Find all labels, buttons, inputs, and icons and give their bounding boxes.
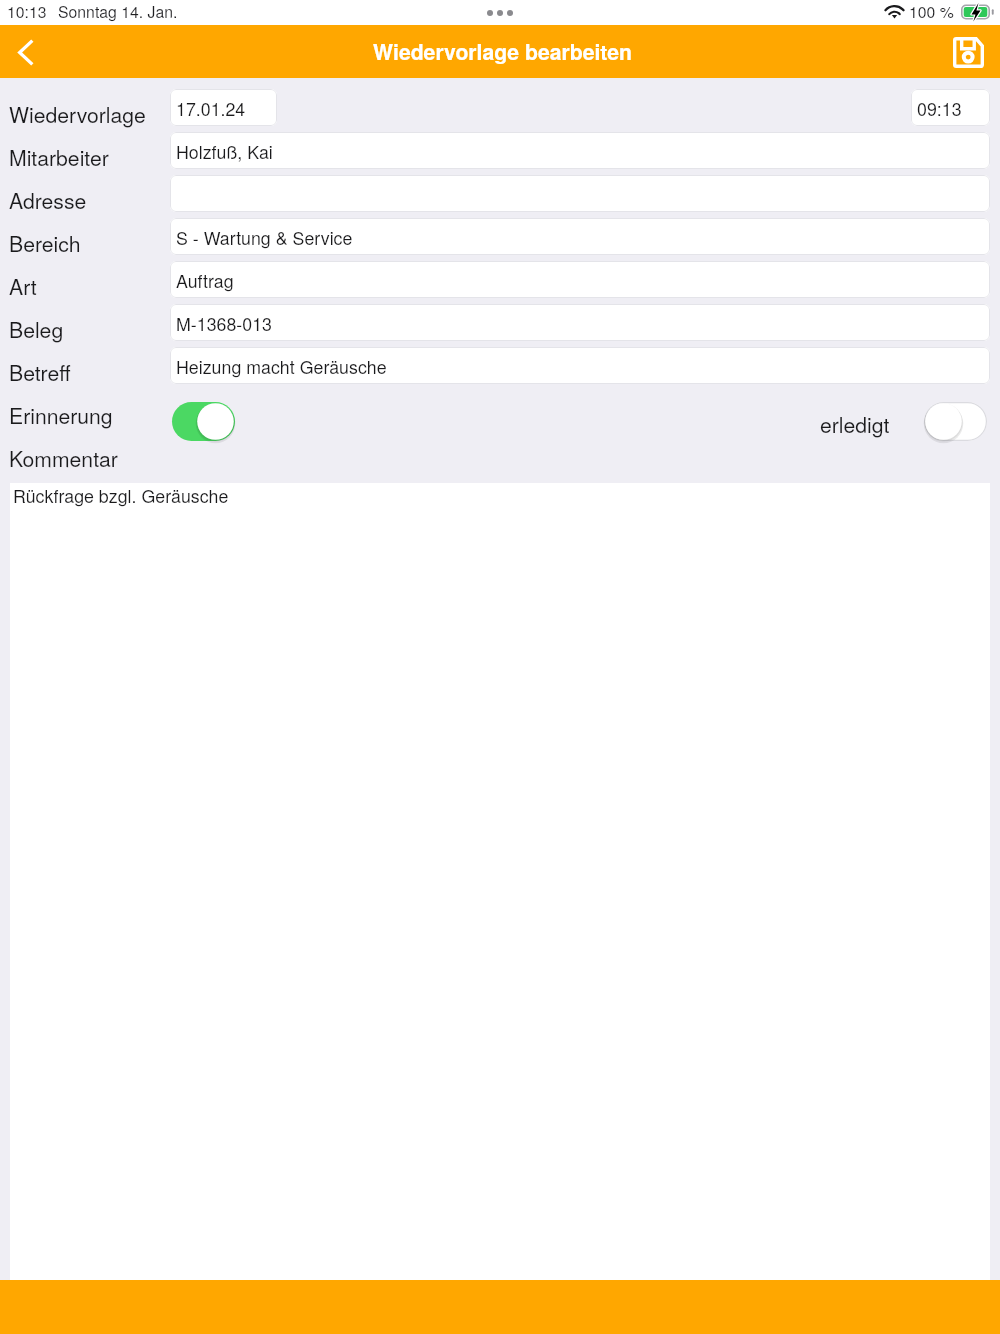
staticText: Adresse — [9, 185, 87, 215]
staticText: Heizung macht Geräusche — [176, 354, 387, 379]
staticText: Auftrag — [176, 268, 234, 293]
staticText: Erinnerung — [9, 400, 113, 430]
button[interactable]: Heizung macht Geräusche — [170, 347, 990, 384]
button[interactable]: 09:13 — [911, 89, 990, 126]
staticText: erledigt — [820, 409, 890, 439]
staticText: Beleg — [9, 314, 64, 344]
button[interactable]: 17.01.24 — [170, 89, 277, 126]
staticText: Betreff — [9, 357, 71, 387]
button[interactable]: Rückfrage bzgl. Geräusche — [10, 483, 990, 1280]
button[interactable]: Zurück — [0, 26, 52, 78]
button[interactable]: S - Wartung & Service — [170, 218, 990, 255]
staticText: S - Wartung & Service — [176, 225, 353, 250]
staticText: Holzfuß, Kai — [176, 139, 273, 164]
button[interactable]: Erinnerung an — [172, 402, 235, 441]
staticText: 100 % — [909, 0, 954, 23]
staticText: 17.01.24 — [176, 96, 246, 121]
button[interactable]: Holzfuß, Kai — [170, 132, 990, 169]
staticText: Rückfrage bzgl. Geräusche — [13, 483, 229, 508]
staticText: Sonntag 14. Jan. — [58, 0, 178, 23]
staticText: M-1368-013 — [176, 311, 272, 336]
staticText: Kommentar — [9, 443, 118, 473]
staticText: 09:13 — [917, 96, 962, 121]
staticText: Wiedervorlage bearbeiten — [373, 36, 633, 66]
button[interactable]: Erledigt aus — [924, 402, 987, 441]
staticText: Wiedervorlage — [9, 99, 146, 129]
button[interactable]: Auftrag — [170, 261, 990, 298]
staticText: Mitarbeiter — [9, 142, 109, 172]
staticText: Bereich — [9, 228, 81, 258]
button[interactable]: M-1368-013 — [170, 304, 990, 341]
button[interactable]: Speichern — [948, 26, 1000, 78]
staticText: 10:13 — [7, 0, 47, 23]
staticText: Art — [9, 271, 37, 301]
button[interactable] — [170, 175, 990, 212]
